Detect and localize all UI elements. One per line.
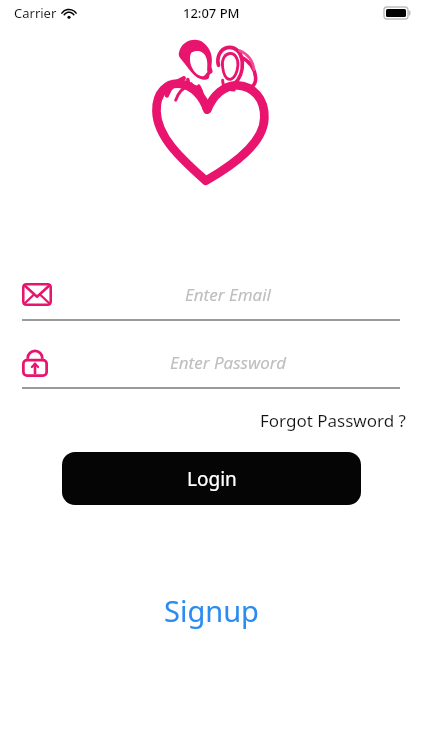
other: Password xyxy=(22,348,56,377)
staticText: Enter Email xyxy=(185,283,271,306)
staticText: Enter Password xyxy=(170,351,287,374)
staticText: Carrier xyxy=(14,4,57,22)
staticText: Signup xyxy=(164,591,259,630)
staticText: Login xyxy=(187,466,237,492)
staticText: 12:07 PM xyxy=(183,4,240,22)
button[interactable]: Forgot Password ? xyxy=(256,403,410,438)
staticText: Forgot Password ? xyxy=(260,409,406,432)
button[interactable]: Email xyxy=(22,275,400,321)
button[interactable]: Password xyxy=(22,343,400,389)
other: Email xyxy=(22,283,56,306)
button[interactable]: Signup xyxy=(154,585,269,636)
button[interactable]: Login xyxy=(62,452,361,505)
